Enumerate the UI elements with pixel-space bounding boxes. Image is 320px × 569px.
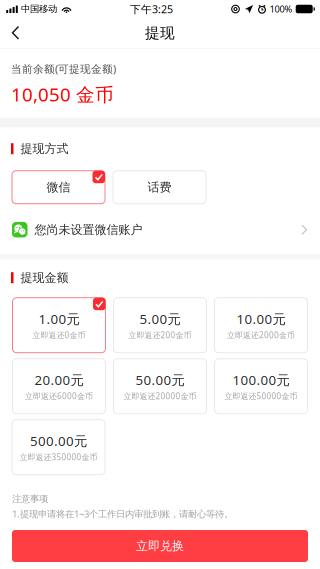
- staticText: 立即返还50000金币: [224, 391, 297, 401]
- button[interactable]: 100.00元: [214, 359, 307, 414]
- staticText: 立即返还2000金币: [227, 330, 295, 340]
- staticText: 立即返还350000金币: [19, 452, 97, 462]
- staticText: 100%: [269, 3, 292, 15]
- staticText: 下午3:25: [130, 2, 173, 16]
- button[interactable]: 50.00元: [113, 359, 206, 414]
- staticText: 当前余额(可提现金额): [11, 62, 116, 76]
- staticText: 1.提现申请将在1~3个工作日内审批到账，请耐心等待。: [12, 508, 233, 520]
- staticText: 50.00元: [135, 371, 184, 389]
- button[interactable]: 5.00元: [113, 298, 206, 353]
- staticText: 立即兑换: [136, 539, 184, 553]
- button[interactable]: 您尚未设置微信账户: [0, 206, 320, 254]
- button[interactable]: 微信: [12, 171, 105, 204]
- button[interactable]: 500.00元: [12, 420, 105, 475]
- staticText: 立即返还20000金币: [123, 391, 196, 401]
- staticText: 500.00元: [30, 432, 87, 450]
- staticText: 话费: [147, 180, 171, 194]
- staticText: 1.00元: [38, 310, 79, 328]
- button[interactable]: Back: [0, 18, 32, 48]
- staticText: 您尚未设置微信账户: [34, 222, 142, 237]
- staticText: 提现: [145, 24, 175, 42]
- staticText: 立即返还6000金币: [25, 391, 93, 401]
- staticText: 100.00元: [232, 371, 289, 389]
- staticText: 中国移动: [21, 3, 57, 15]
- button[interactable]: 1.00元: [12, 298, 105, 353]
- staticText: 立即返还0金币: [32, 330, 85, 340]
- staticText: 10,050 金币: [11, 82, 114, 107]
- button[interactable]: 立即兑换: [12, 530, 308, 562]
- staticText: 20.00元: [34, 371, 83, 389]
- staticText: 微信: [46, 180, 70, 194]
- button[interactable]: 20.00元: [12, 359, 105, 414]
- staticText: 立即返还200金币: [128, 330, 191, 340]
- button[interactable]: 10.00元: [214, 298, 307, 353]
- staticText: 提现金额: [20, 270, 68, 285]
- staticText: 10.00元: [236, 310, 285, 328]
- staticText: 注意事项: [12, 493, 48, 505]
- staticText: 5.00元: [139, 310, 180, 328]
- button[interactable]: 话费: [113, 171, 206, 204]
- staticText: 提现方式: [20, 141, 68, 156]
